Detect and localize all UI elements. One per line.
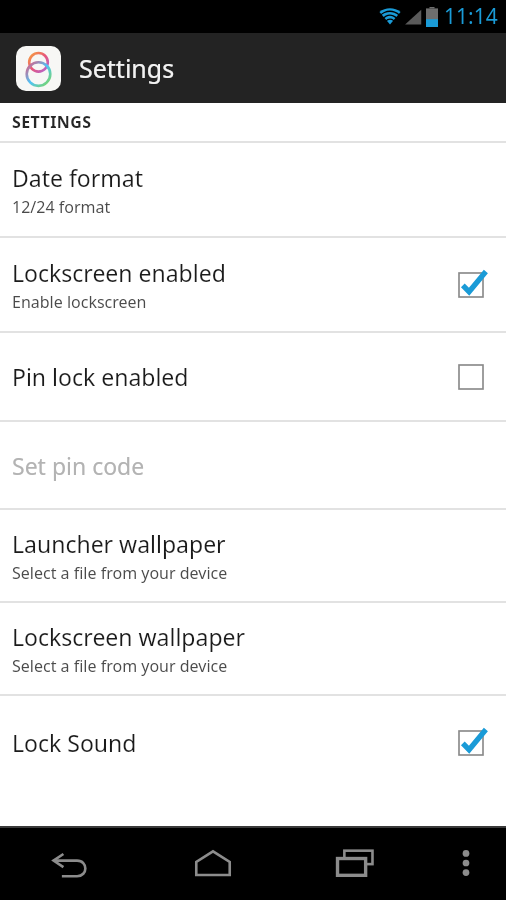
staticText: 11:14 [444,2,498,31]
staticText: Lock Sound [12,727,137,758]
staticText: Select a file from your device [12,655,228,677]
button[interactable]: Pin lock enabled [0,333,506,420]
staticText: Lockscreen wallpaper [12,621,246,652]
button[interactable]: More options [426,826,506,900]
staticText: Date format [12,162,143,193]
staticText: Settings [79,51,175,85]
button[interactable]: Home [142,826,284,900]
staticText: Launcher wallpaper [12,528,226,559]
button[interactable]: Recent apps [284,826,426,900]
staticText: Pin lock enabled [12,361,189,392]
staticText: 12/24 format [12,196,111,218]
button[interactable]: Date format [0,143,506,236]
staticText: Lockscreen enabled [12,257,226,288]
button[interactable]: Back [0,826,142,900]
staticText: Set pin code [12,450,145,481]
button[interactable]: Lockscreen enabled [0,238,506,331]
button[interactable]: Lockscreen wallpaper [0,603,506,694]
staticText: Select a file from your device [12,562,228,584]
button[interactable]: Set pin code [0,422,506,508]
staticText: SETTINGS [12,111,92,133]
staticText: Enable lockscreen [12,291,147,313]
button[interactable]: Launcher wallpaper [0,510,506,601]
button[interactable]: Lock Sound [0,696,506,789]
